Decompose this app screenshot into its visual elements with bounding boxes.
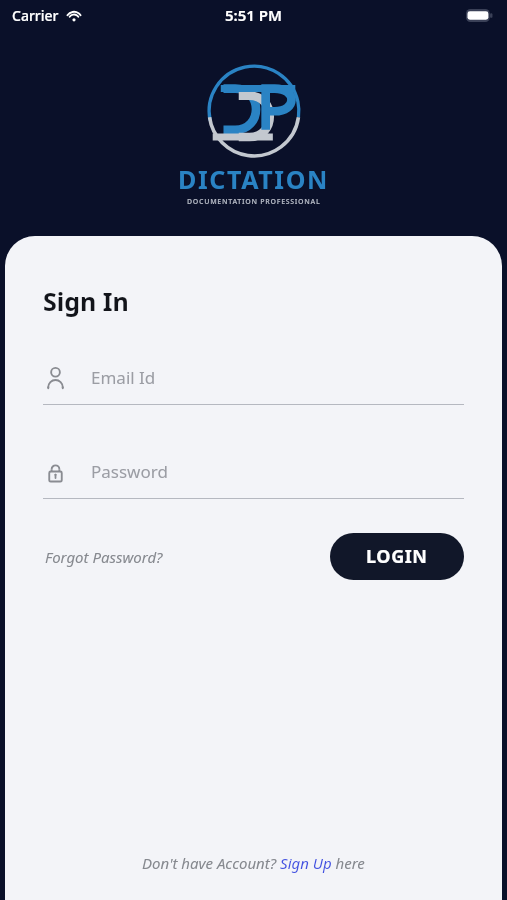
staticText: Don't have Account? Sign Up here (142, 853, 365, 873)
staticText: DOCUMENTATION PROFESSIONAL (187, 197, 321, 207)
staticText: 5:51 PM (225, 5, 282, 25)
staticText: LOGIN (366, 544, 428, 569)
button[interactable]: Email Id field (43, 365, 464, 405)
other: Password field (43, 459, 68, 484)
staticText: Forgot Password? (45, 547, 163, 567)
button[interactable]: Password field (43, 459, 464, 499)
staticText: Carrier (12, 6, 59, 25)
other: Email Id field (43, 365, 68, 390)
staticText: Sign In (43, 284, 129, 318)
staticText: Password (91, 460, 168, 483)
staticText: DICTATION (178, 162, 329, 196)
button[interactable]: Forgot Password? (43, 539, 165, 575)
button[interactable]: LOGIN (330, 533, 464, 580)
staticText: Email Id (91, 366, 156, 389)
button[interactable]: Don't have Account? Sign Up here (137, 848, 370, 878)
